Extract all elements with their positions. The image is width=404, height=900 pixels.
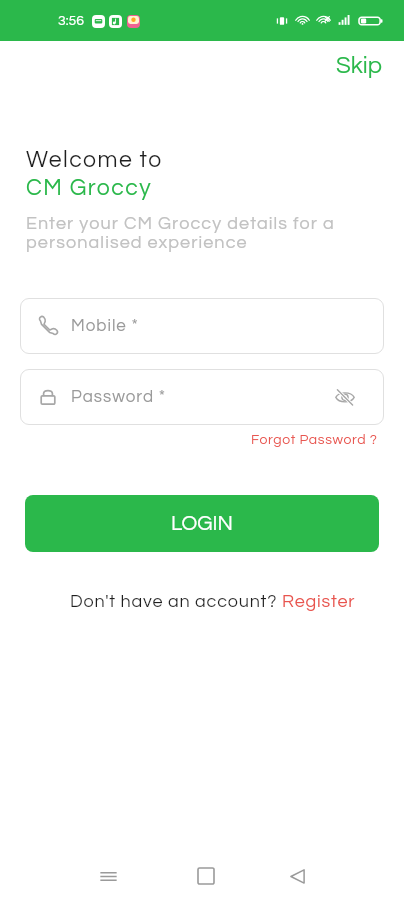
button[interactable]: Recent apps — [80, 848, 136, 900]
staticText: CM Groccy — [26, 176, 153, 200]
button[interactable]: Show password — [325, 377, 365, 417]
staticText: Password * — [71, 388, 166, 406]
staticText: Mobile * — [71, 317, 139, 335]
staticText: Forgot Password ? — [251, 433, 378, 447]
staticText: LOGIN — [171, 513, 233, 535]
button[interactable]: Password * — [20, 369, 384, 425]
staticText: Don't have an account? — [70, 592, 282, 611]
button[interactable]: Skip — [315, 47, 404, 84]
button[interactable]: Forgot Password ? — [243, 425, 384, 451]
staticText: Enter your CM Groccy details for a perso… — [26, 214, 335, 252]
button[interactable]: Register — [282, 592, 356, 611]
staticText: 3:56 — [58, 14, 84, 28]
button[interactable]: LOGIN — [25, 495, 379, 552]
button[interactable]: Home — [178, 848, 234, 900]
staticText: Skip — [336, 53, 383, 78]
button[interactable]: Back — [269, 848, 325, 900]
staticText: Welcome to — [26, 148, 163, 172]
staticText: Register — [282, 592, 356, 611]
button[interactable]: Mobile * — [20, 298, 384, 354]
